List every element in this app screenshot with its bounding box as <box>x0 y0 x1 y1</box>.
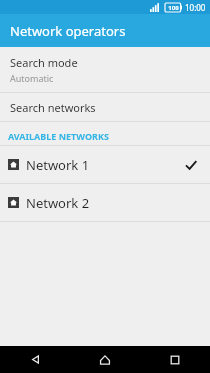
staticText: 100 <box>168 4 179 12</box>
staticText: Network 1 <box>26 156 184 174</box>
button[interactable]: Back <box>0 346 70 373</box>
button[interactable]: Search networks <box>0 93 210 121</box>
staticText: Search mode <box>10 55 78 70</box>
button[interactable]: Recent apps <box>140 346 210 373</box>
other: Selected <box>184 158 198 172</box>
button[interactable]: Home <box>70 346 140 373</box>
staticText: 10:00 <box>185 2 206 13</box>
staticText: Automatic <box>10 72 54 84</box>
button[interactable]: Network 1 <box>0 146 210 183</box>
staticText: Network 2 <box>26 194 198 212</box>
staticText: Network operators <box>10 22 126 40</box>
button[interactable]: Search mode <box>0 47 210 92</box>
staticText: AVAILABLE NETWORKS <box>8 130 109 142</box>
staticText: Search networks <box>10 100 96 115</box>
button[interactable]: Network 2 <box>0 184 210 221</box>
